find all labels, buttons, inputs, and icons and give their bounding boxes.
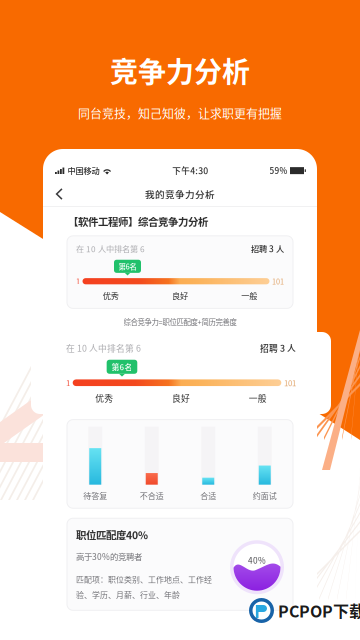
staticText: 职位匹配度40% [76,527,148,542]
staticText: 第6名 [118,261,136,272]
staticText: 良好 [172,289,188,301]
staticText: 59% [269,165,287,176]
staticText: 不合适 [140,490,164,501]
staticText: 验、学历、月薪、行业、年龄 [76,589,180,600]
staticText: 综合竞争力=职位匹配度+简历完善度 [123,316,236,327]
staticText: 1 [66,377,70,388]
staticText: 【软件工程师】综合竞争力分析 [68,214,208,229]
staticText: 竞争力分析 [110,50,250,90]
staticText: 一般 [249,392,267,404]
staticText: 101 [272,276,284,286]
staticText: 在 10 人中排名第 6 [66,342,141,354]
staticText: 一般 [241,391,257,403]
staticText: 我的竞争力分析 [145,187,215,201]
staticText: 1 [76,276,80,286]
staticText: 1 [76,377,80,388]
staticText: 待答复 [83,490,107,501]
staticText: 下午4:30 [172,164,208,177]
staticText: 优秀 [103,391,119,403]
staticText: 招聘 3 人 [251,243,284,255]
staticText: 招聘 3 人 [260,342,296,354]
staticText: 同台竞技，知己知彼，让求职更有把握 [78,104,282,122]
staticText: 匹配项：职位类别、工作地点、工作经 [76,573,212,585]
staticText: 第6名 [118,362,136,373]
staticText: 招聘 3 人 [251,344,284,356]
staticText: 101 [284,377,296,388]
staticText: 在 10 人中排名第 6 [76,344,145,356]
staticText: 优秀 [95,392,113,404]
staticText: 约面试 [253,490,277,501]
button[interactable]: 返回 [48,181,70,206]
staticText: 中国移动 [67,165,99,176]
staticText: 合适 [200,490,216,501]
staticText: 第6名 [111,361,132,372]
staticText: 良好 [172,391,188,403]
staticText: 优秀 [103,289,119,301]
staticText: 良好 [172,392,190,404]
staticText: 101 [272,377,284,388]
staticText: 40% [248,554,266,566]
staticText: 在 10 人中排名第 6 [76,243,145,255]
staticText: 一般 [241,289,257,301]
staticText: PCPOP下载 [278,599,360,622]
staticText: 高于30%的竞聘者 [76,550,142,562]
